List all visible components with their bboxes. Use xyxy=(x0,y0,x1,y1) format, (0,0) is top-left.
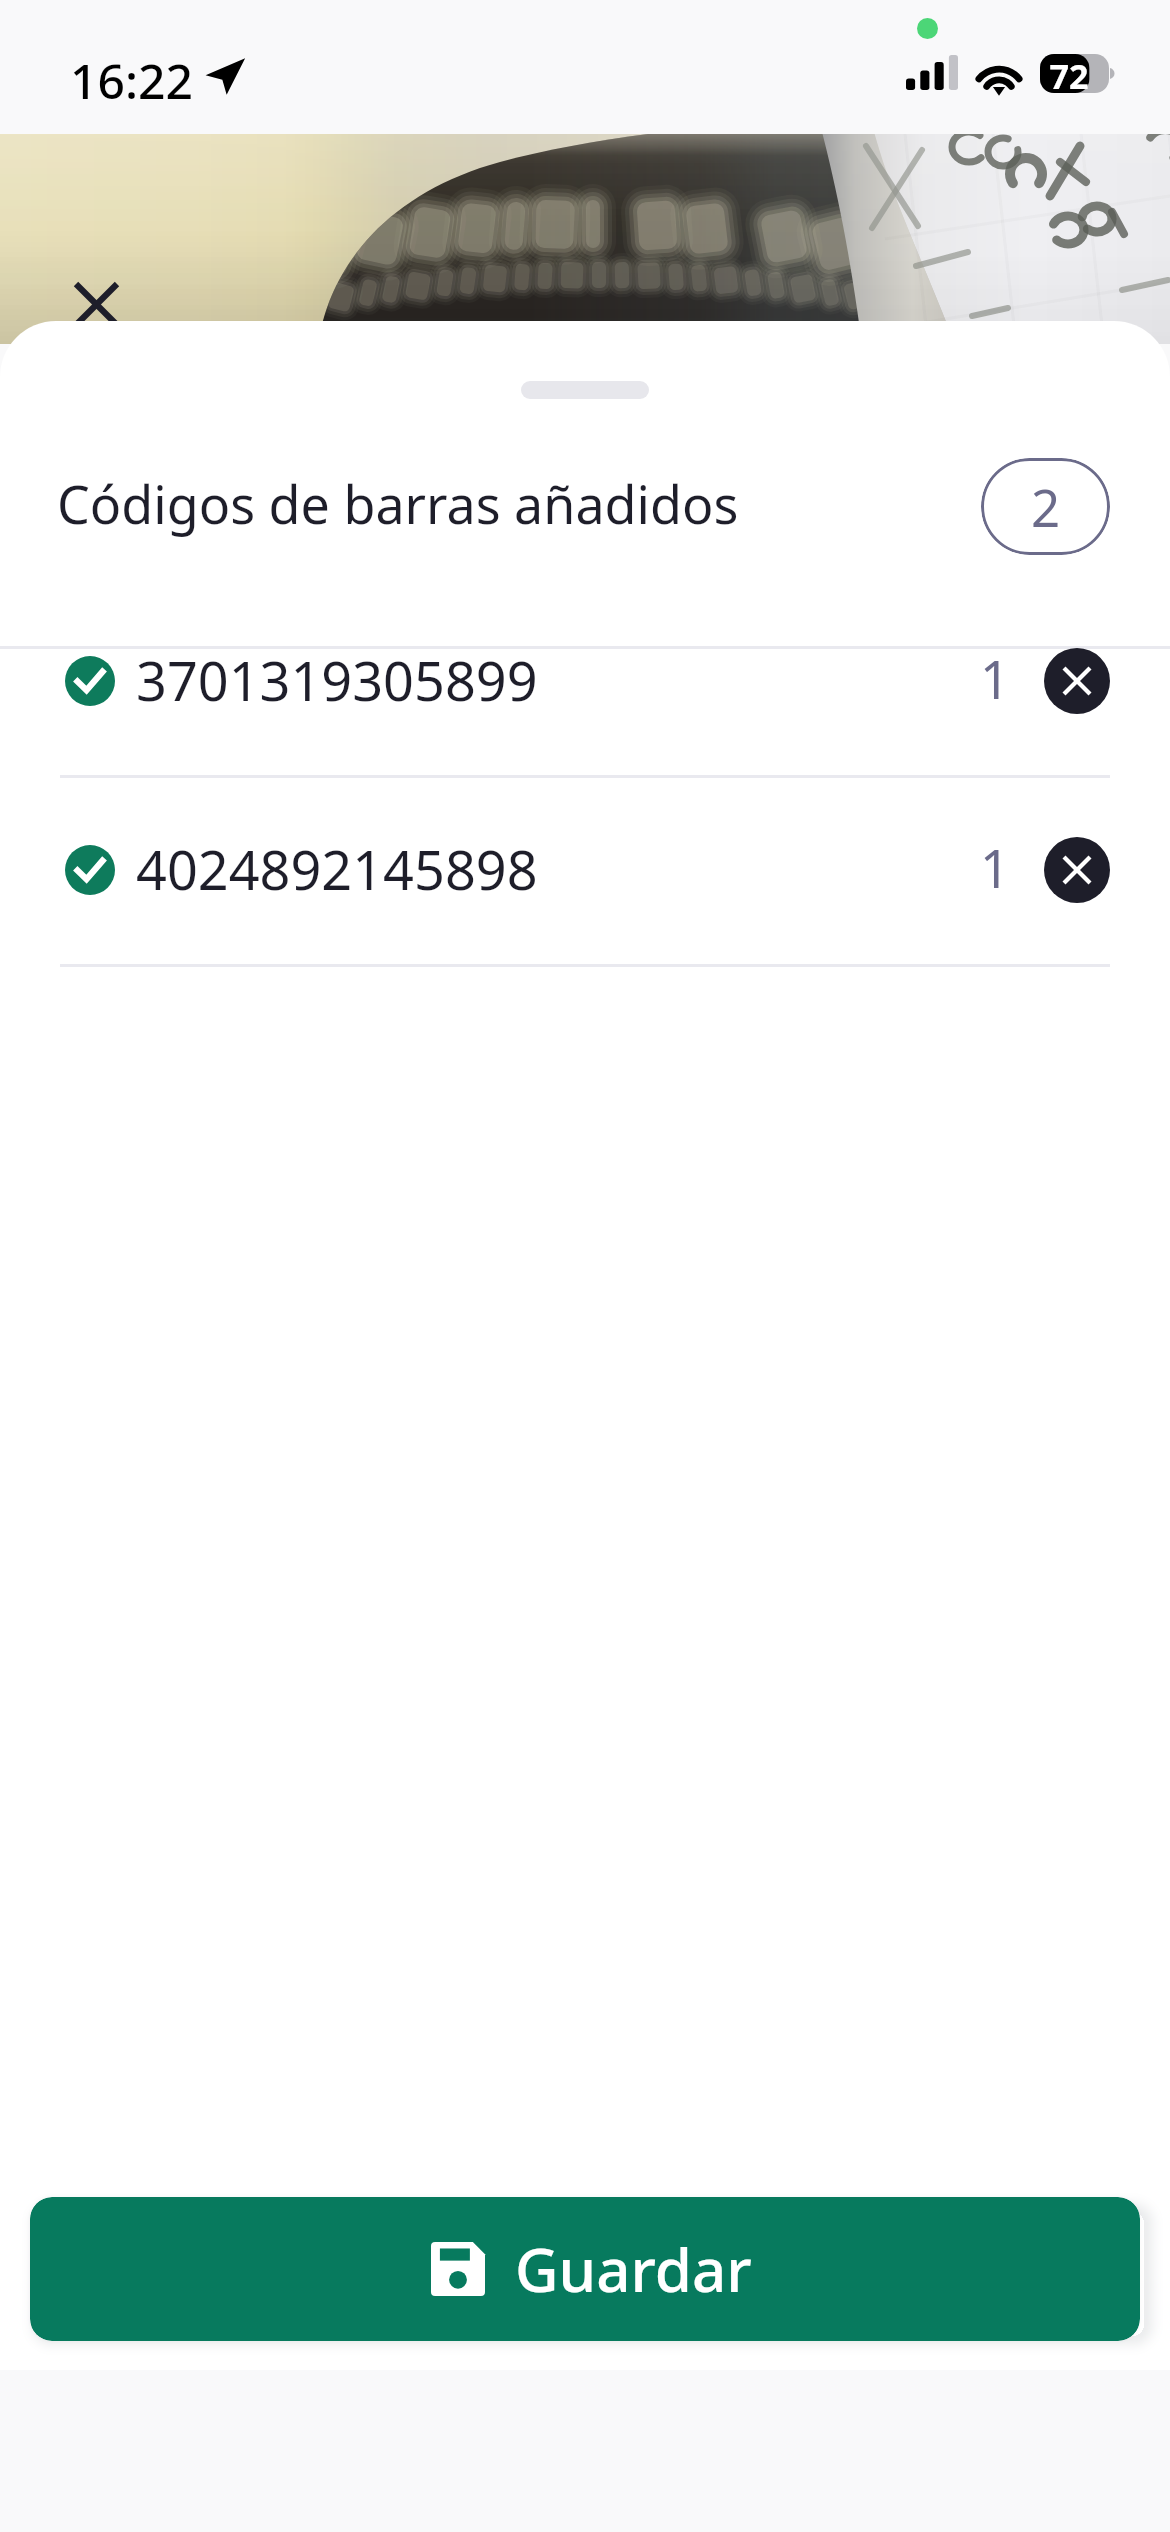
button[interactable]: 3701319305899 xyxy=(0,648,1170,714)
staticText: Códigos de barras añadidos xyxy=(57,468,739,539)
staticText: 2 xyxy=(1031,472,1061,541)
staticText: 4024892145898 xyxy=(136,832,538,898)
staticText: 1 xyxy=(980,643,1010,709)
staticText: Guardar xyxy=(515,2228,752,2310)
button[interactable]: Eliminar código xyxy=(1044,837,1110,903)
staticText: 1 xyxy=(980,832,1010,898)
button[interactable]: Cerrar xyxy=(60,268,132,340)
staticText: 16:22 xyxy=(70,48,193,113)
button[interactable]: Eliminar código xyxy=(1044,648,1110,714)
button[interactable]: 4024892145898 xyxy=(0,837,1170,903)
staticText: 3701319305899 xyxy=(136,643,538,709)
staticText: 72 xyxy=(1046,53,1092,99)
button[interactable]: 2 xyxy=(981,458,1110,555)
button[interactable]: Guardar xyxy=(30,2197,1140,2341)
